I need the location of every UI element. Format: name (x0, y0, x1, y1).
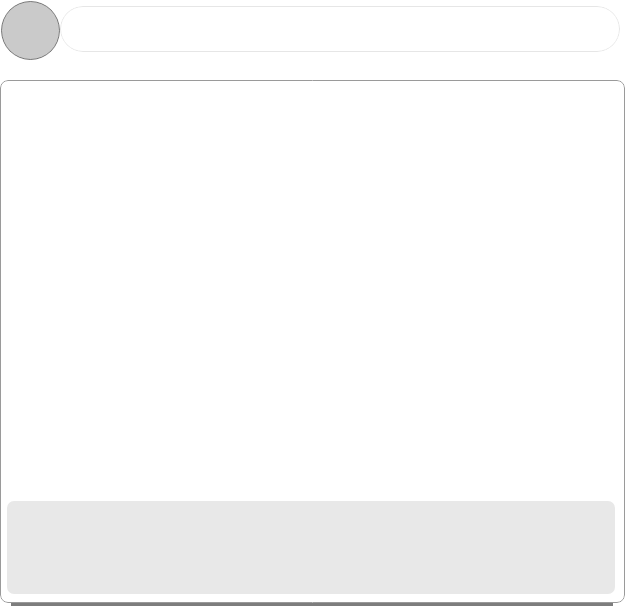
button[interactable] (60, 6, 620, 52)
button[interactable]: Profile (1, 1, 60, 60)
